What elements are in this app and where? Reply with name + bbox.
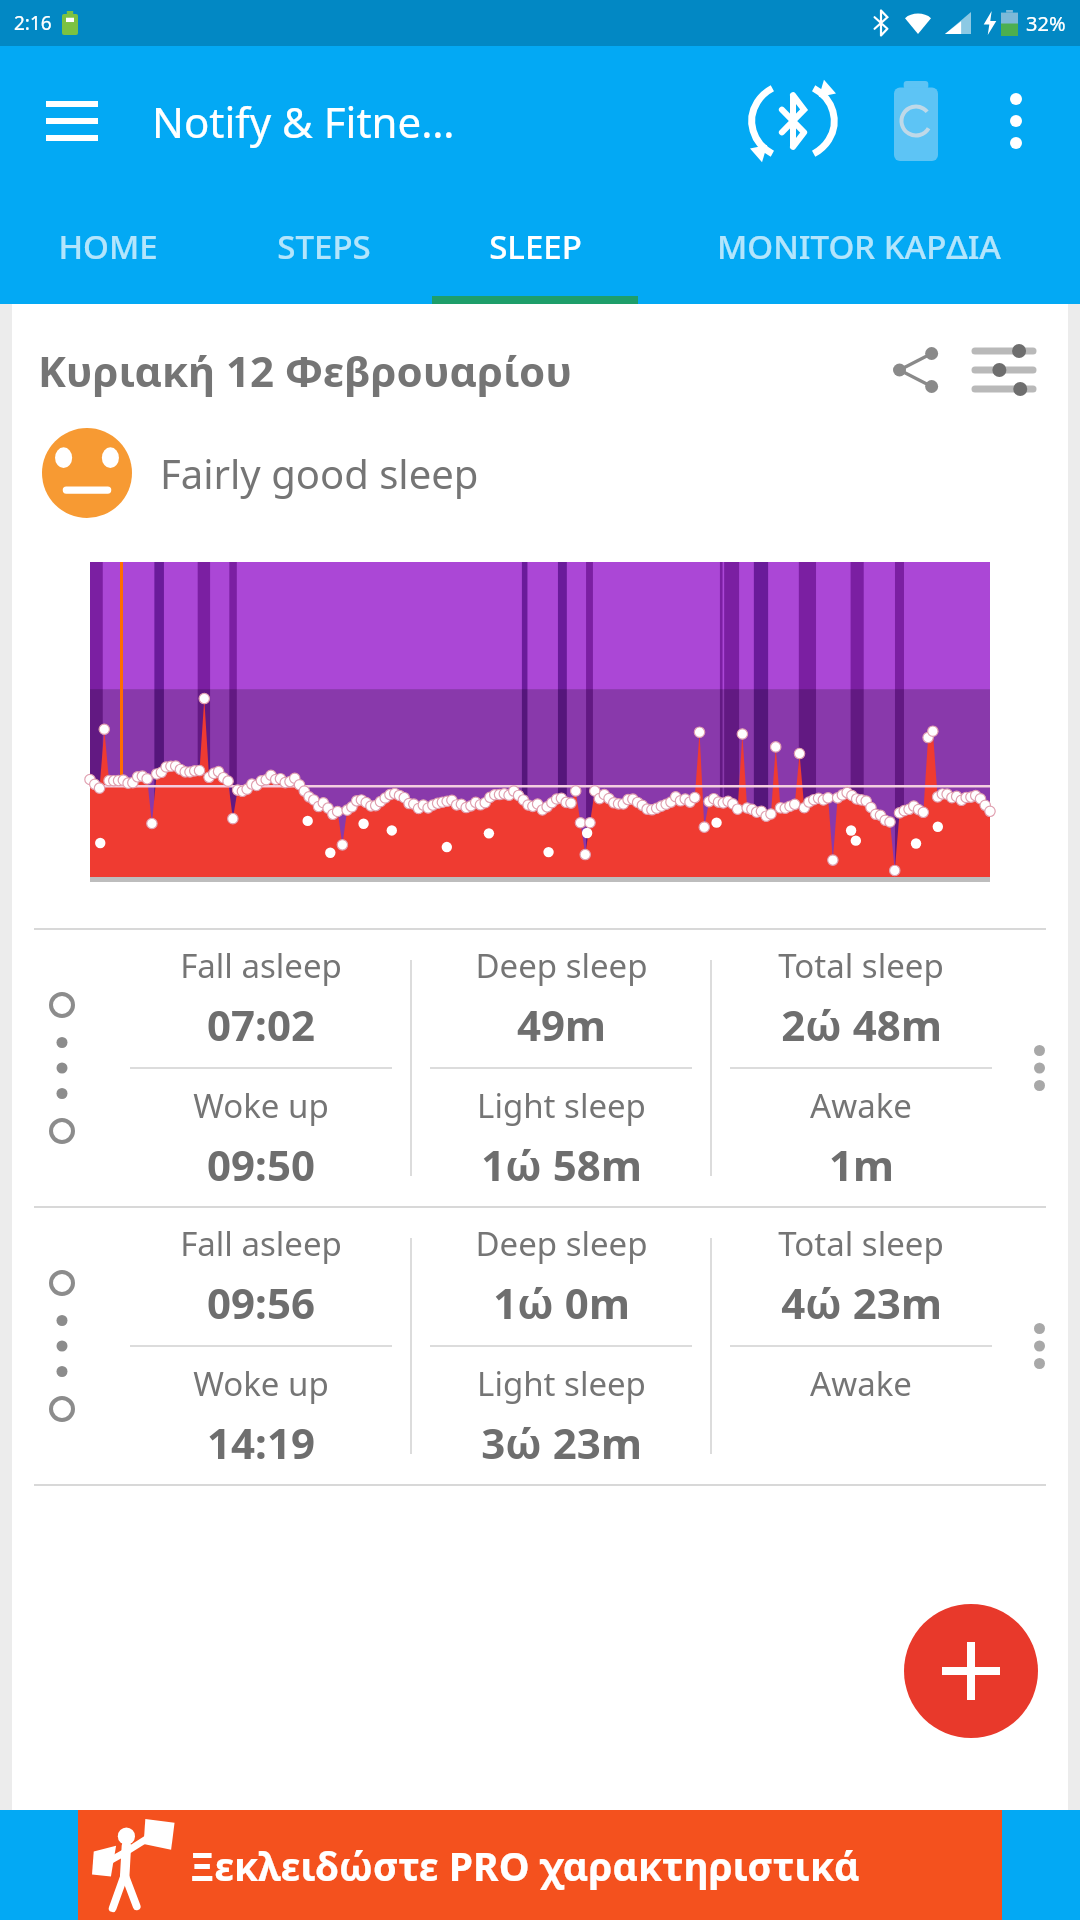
staticText: 09:56 [207, 1274, 315, 1331]
staticText: 2ώ 48m [781, 996, 942, 1053]
button[interactable]: Add sleep record [904, 1604, 1038, 1738]
staticText: 1m [829, 1136, 894, 1193]
staticText: Total sleep [778, 943, 944, 988]
staticText: Notify & Fitne… [152, 93, 455, 150]
staticText: 09:50 [207, 1136, 315, 1193]
staticText: Fairly good sleep [160, 446, 479, 500]
button[interactable]: Bluetooth sync [738, 66, 848, 176]
staticText: 1ώ 58m [481, 1136, 642, 1193]
staticText: Light sleep [477, 1361, 646, 1406]
staticText: Fall asleep [180, 943, 342, 988]
staticText: MONITOR ΚΑΡΔΙΑ [717, 224, 1001, 269]
staticText: Woke up [193, 1083, 329, 1128]
button[interactable]: Share [878, 332, 954, 408]
button[interactable]: Device battery sync [866, 71, 966, 171]
button[interactable]: HOME [0, 196, 216, 296]
button[interactable]: Ξεκλειδώστε PRO χαρακτηριστικά [78, 1810, 1002, 1920]
button[interactable]: More options [966, 71, 1066, 171]
staticText: 2:16 [14, 10, 52, 36]
staticText: 14:19 [207, 1414, 315, 1471]
button[interactable]: MONITOR ΚΑΡΔΙΑ [638, 196, 1080, 296]
staticText: 07:02 [207, 996, 315, 1053]
button[interactable]: Record options [1010, 1208, 1068, 1484]
staticText: Total sleep [778, 1221, 944, 1266]
button[interactable]: STEPS [216, 196, 432, 296]
staticText: Deep sleep [475, 943, 648, 988]
staticText: Ξεκλειδώστε PRO χαρακτηριστικά [190, 1839, 860, 1892]
staticText: SLEEP [489, 224, 582, 269]
staticText: 49m [517, 996, 606, 1053]
staticText: Light sleep [477, 1083, 646, 1128]
staticText: HOME [58, 224, 158, 269]
staticText: STEPS [277, 224, 371, 269]
staticText: 32% [1026, 10, 1066, 37]
staticText: Deep sleep [475, 1221, 648, 1266]
button[interactable]: Open navigation menu [36, 85, 108, 157]
staticText: 3ώ 23m [481, 1414, 642, 1471]
button[interactable]: Fall asleep [12, 1208, 1068, 1484]
button[interactable]: Fall asleep [12, 930, 1068, 1206]
button[interactable]: SLEEP [432, 196, 638, 296]
button[interactable]: Record options [1010, 930, 1068, 1206]
button[interactable]: Settings [964, 330, 1044, 410]
staticText: Awake [810, 1361, 912, 1406]
staticText: 1ώ 0m [493, 1274, 630, 1331]
staticText: Woke up [193, 1361, 329, 1406]
staticText: Awake [810, 1083, 912, 1128]
staticText: Κυριακή 12 Φεβρουαρίου [38, 342, 573, 399]
staticText: Fall asleep [180, 1221, 342, 1266]
staticText: 4ώ 23m [781, 1274, 942, 1331]
